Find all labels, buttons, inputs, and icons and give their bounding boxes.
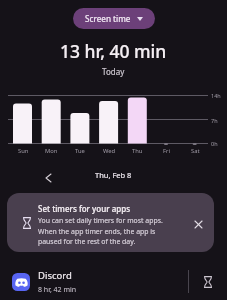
- staticText: Thu: [132, 147, 143, 155]
- staticText: 8 hr, 42 min: [38, 285, 77, 295]
- staticText: Screen time: [85, 13, 131, 24]
- staticText: Sat: [191, 147, 200, 155]
- staticText: 0h: [211, 140, 218, 147]
- button[interactable]: Screen time: [73, 8, 155, 29]
- button[interactable]: [197, 271, 219, 293]
- staticText: Discord: [38, 269, 72, 282]
- staticText: Tue: [75, 147, 85, 155]
- button[interactable]: Discord: [0, 266, 227, 300]
- button[interactable]: [189, 215, 207, 233]
- button[interactable]: [39, 169, 57, 187]
- staticText: Wed: [103, 147, 116, 155]
- button[interactable]: Set timers for your apps: [7, 193, 214, 252]
- staticText: 14h: [211, 92, 221, 99]
- staticText: You can set daily timers for most apps. …: [38, 216, 163, 246]
- staticText: Fri: [163, 147, 170, 155]
- staticText: Mon: [45, 147, 58, 155]
- staticText: Thu, Feb 8: [95, 170, 132, 180]
- staticText: Today: [102, 66, 125, 77]
- staticText: 13 hr, 40 min: [60, 39, 167, 63]
- staticText: 7h: [211, 117, 218, 124]
- staticText: Sun: [18, 147, 29, 155]
- staticText: Set timers for your apps: [38, 203, 131, 214]
